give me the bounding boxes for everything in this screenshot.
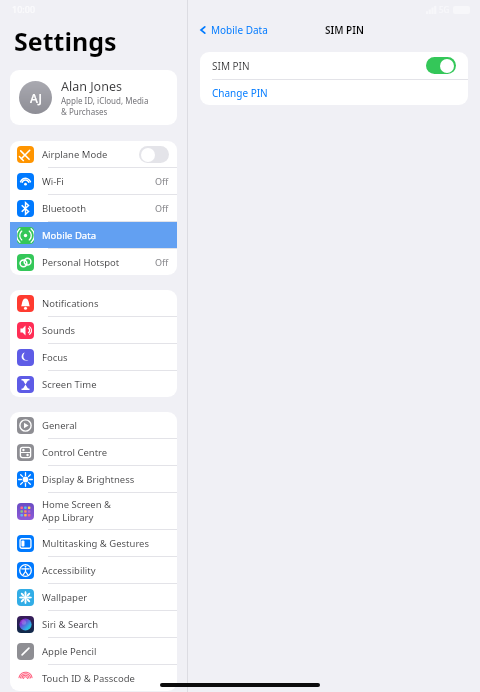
staticText: Settings [14, 24, 117, 58]
staticText: AJ [30, 90, 42, 106]
button[interactable]: Wallpaper [10, 584, 177, 610]
staticText: Siri & Search [42, 618, 99, 631]
staticText: Accessibility [42, 564, 96, 577]
button[interactable]: Multitasking & Gestures [10, 530, 177, 556]
button[interactable]: Screen Time [10, 371, 177, 397]
button[interactable]: Home Screen & [10, 493, 177, 529]
button[interactable]: Change PIN [200, 80, 468, 105]
button[interactable]: Accessibility [10, 557, 177, 583]
staticText: Bluetooth [42, 202, 87, 215]
button[interactable]: Mobile Data [10, 222, 177, 248]
button[interactable]: Touch ID & Passcode [10, 665, 177, 691]
staticText: Display & Brightness [42, 473, 135, 486]
staticText: Notifications [42, 297, 99, 310]
staticText: Touch ID & Passcode [42, 672, 135, 685]
staticText: Multitasking & Gestures [42, 537, 150, 550]
button[interactable]: Airplane Mode [10, 141, 177, 167]
staticText: Alan Jones [61, 78, 122, 95]
staticText: Wallpaper [42, 591, 88, 604]
staticText: SIM PIN [212, 59, 250, 73]
button[interactable]: Siri & Search [10, 611, 177, 637]
button[interactable]: Notifications [10, 290, 177, 316]
button[interactable]: Bluetooth [10, 195, 177, 221]
staticText: Off [155, 256, 169, 268]
button[interactable]: Toggle on [426, 57, 456, 74]
staticText: Personal Hotspot [42, 256, 120, 269]
staticText: Control Centre [42, 446, 108, 459]
staticText: Apple ID, iCloud, Media [61, 95, 149, 106]
button[interactable]: Mobile Data [198, 23, 268, 37]
staticText: Sounds [42, 324, 76, 337]
staticText: Home Screen & [42, 498, 112, 511]
button[interactable]: Personal Hotspot [10, 249, 177, 275]
staticText: Apple Pencil [42, 645, 97, 658]
staticText: Screen Time [42, 378, 97, 391]
button[interactable]: Wi-Fi [10, 168, 177, 194]
button[interactable]: SIM PIN [200, 52, 468, 79]
button[interactable]: General [10, 412, 177, 438]
staticText: SIM PIN [325, 23, 364, 37]
button[interactable]: Control Centre [10, 439, 177, 465]
staticText: App Library [42, 511, 94, 524]
staticText: Focus [42, 351, 68, 364]
staticText: Off [155, 202, 169, 214]
staticText: Change PIN [212, 86, 268, 100]
button[interactable]: AJ [10, 70, 177, 125]
button[interactable]: Focus [10, 344, 177, 370]
staticText: Mobile Data [42, 229, 96, 242]
button[interactable]: Apple Pencil [10, 638, 177, 664]
button[interactable]: Display & Brightness [10, 466, 177, 492]
staticText: 10:00 [12, 3, 36, 15]
button[interactable]: Sounds [10, 317, 177, 343]
staticText: & Purchases [61, 106, 108, 117]
button[interactable]: Toggle off [139, 146, 169, 163]
staticText: Mobile Data [211, 23, 268, 37]
staticText: Airplane Mode [42, 148, 108, 161]
staticText: Off [155, 175, 169, 187]
staticText: Wi-Fi [42, 175, 64, 188]
staticText: General [42, 419, 78, 432]
